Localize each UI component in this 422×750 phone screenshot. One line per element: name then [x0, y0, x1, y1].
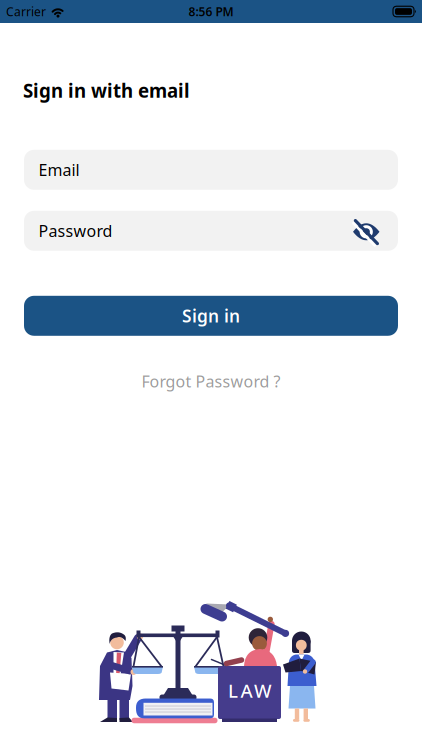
button[interactable]: Email	[24, 150, 398, 190]
staticText: Carrier	[6, 3, 46, 19]
button[interactable]: Password	[24, 211, 398, 251]
staticText: Sign in with email	[23, 78, 190, 103]
staticText: Email	[38, 159, 79, 180]
staticText: Sign in	[182, 304, 240, 327]
staticText: 8:56 PM	[188, 3, 233, 19]
staticText: Forgot Password ?	[141, 371, 280, 392]
button[interactable]: Forgot Password ?	[141, 371, 280, 392]
staticText: LAW	[228, 678, 272, 703]
staticText: Password	[38, 220, 112, 241]
button[interactable]: Show password	[353, 219, 379, 243]
button[interactable]: Sign in	[24, 296, 398, 336]
